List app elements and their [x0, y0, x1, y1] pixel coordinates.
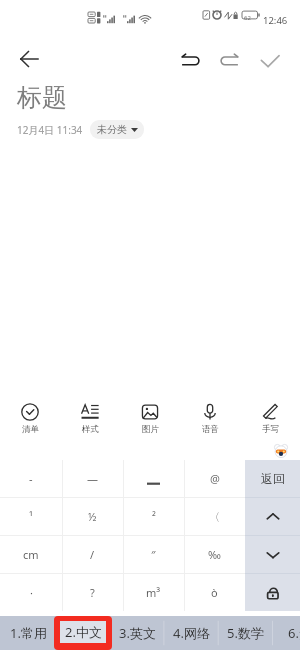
staticText: 手写 [262, 424, 279, 435]
button[interactable]: ½ [62, 498, 123, 535]
staticText: 清单 [22, 424, 39, 435]
button[interactable]: Long dash [123, 460, 184, 497]
button[interactable]: ? [62, 574, 123, 611]
button[interactable]: ‰ [184, 536, 245, 573]
button[interactable]: Page down [245, 536, 300, 573]
button[interactable]: 未分类 [90, 120, 144, 139]
staticText: 5.数学 [227, 624, 264, 642]
staticText: 样式 [82, 424, 99, 435]
button[interactable]: / [62, 536, 123, 573]
staticText: · [30, 585, 33, 600]
staticText: ¹ [29, 509, 33, 524]
button[interactable]: 4.网络 [164, 616, 218, 650]
button[interactable]: 6.角 [273, 616, 300, 650]
button[interactable]: 〈 [184, 498, 245, 535]
staticText: 3.英文 [119, 624, 156, 642]
button[interactable]: 1.常用 [1, 616, 55, 650]
staticText: 返回 [261, 471, 285, 486]
staticText: 标题 [17, 82, 67, 113]
staticText: 图片 [142, 424, 159, 435]
button[interactable]: m³ [123, 574, 184, 611]
button[interactable]: 5.数学 [218, 616, 272, 650]
staticText: ‰ [208, 547, 221, 562]
button[interactable]: Lock [245, 574, 300, 611]
button[interactable]: 3.英文 [110, 616, 164, 650]
staticText: @ [210, 471, 220, 486]
button[interactable]: Back [9, 38, 49, 78]
staticText: 2.中文 [65, 623, 102, 641]
staticText: — [87, 471, 98, 486]
staticText: ? [90, 585, 95, 600]
staticText: ″ [151, 547, 156, 562]
button[interactable]: 2.中文 [60, 621, 106, 643]
staticText: 〈 [209, 510, 220, 524]
button[interactable]: - [0, 460, 62, 497]
staticText: 62 [244, 14, 251, 22]
button[interactable]: ¹ [0, 498, 62, 535]
staticText: m³ [146, 585, 161, 600]
button[interactable]: · [0, 574, 62, 611]
button[interactable]: ò [184, 574, 245, 611]
staticText: 6.角 [288, 624, 300, 642]
button[interactable]: 图片 [126, 383, 174, 441]
button[interactable]: cm [0, 536, 62, 573]
button[interactable]: 语音 [186, 383, 234, 441]
staticText: ² [152, 509, 156, 524]
staticText: 12月4日 11:34 [17, 123, 83, 137]
button[interactable]: 返回 [245, 460, 300, 497]
button[interactable]: @ [184, 460, 245, 497]
button[interactable]: — [62, 460, 123, 497]
button[interactable]: Input method logo [274, 444, 288, 458]
staticText: ò [211, 585, 218, 600]
staticText: 12:46 [263, 14, 288, 27]
staticText: ½ [88, 509, 97, 524]
staticText: 1.常用 [10, 624, 47, 642]
button[interactable]: Redo [209, 40, 250, 81]
button[interactable]: Page up [245, 498, 300, 535]
button[interactable]: 手写 [246, 383, 294, 441]
button[interactable]: 样式 [66, 383, 114, 441]
button[interactable]: ″ [123, 536, 184, 573]
staticText: 未分类 [97, 123, 127, 136]
staticText: - [29, 471, 33, 486]
button[interactable]: 清单 [6, 383, 54, 441]
button[interactable]: Done [249, 40, 290, 81]
staticText: 4.网络 [173, 624, 210, 642]
button[interactable]: Undo [170, 40, 211, 81]
staticText: / [90, 547, 95, 562]
staticText: 语音 [202, 424, 219, 435]
button[interactable]: ² [123, 498, 184, 535]
staticText: cm [23, 547, 39, 562]
